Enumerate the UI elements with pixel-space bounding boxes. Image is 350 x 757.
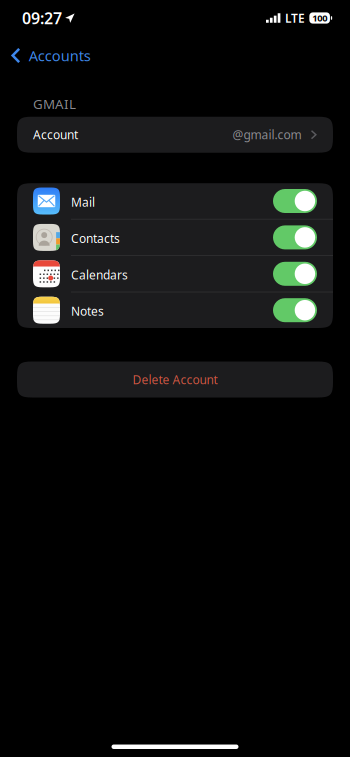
staticText: Notes (71, 303, 104, 319)
staticText: GMAIL (33, 95, 76, 113)
staticText: Accounts (29, 46, 91, 65)
staticText: LTE (285, 10, 305, 26)
staticText: Contacts (71, 230, 120, 246)
staticText: 09:27 (22, 7, 62, 29)
staticText: Mail (71, 194, 95, 210)
button[interactable]: Notes on (273, 298, 317, 322)
staticText: Account (33, 127, 78, 143)
button[interactable]: Mail on (273, 189, 317, 213)
staticText: Delete Account (132, 371, 217, 387)
button[interactable]: Accounts (0, 36, 103, 75)
staticText: @gmail.com (232, 127, 301, 143)
button[interactable]: Account (17, 117, 333, 153)
staticText: Calendars (71, 267, 128, 283)
button[interactable]: Calendars on (273, 262, 317, 286)
button[interactable]: Contacts on (273, 225, 317, 249)
button[interactable]: Delete Account (17, 361, 333, 397)
staticText: 100 (312, 12, 327, 24)
